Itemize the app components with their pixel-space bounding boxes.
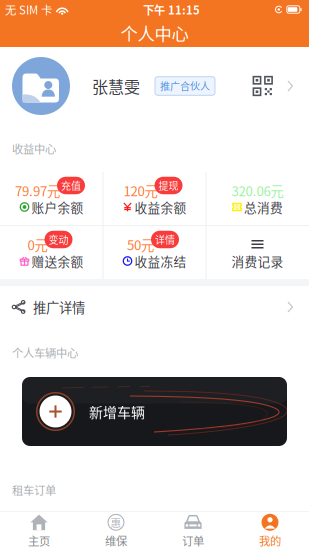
staticText: 120元 (123, 181, 157, 200)
staticText: 收益余额 (134, 198, 186, 216)
button[interactable]: 79.97元 (0, 172, 102, 225)
staticText: 张慧雯 (92, 74, 140, 98)
button[interactable]: 订单 (154, 512, 231, 550)
staticText: 推广详情 (33, 297, 85, 317)
staticText: 下午 11:15 (143, 1, 200, 18)
staticText: 充值 (61, 178, 81, 193)
staticText: 无 SIM 卡 (5, 1, 52, 18)
button[interactable]: 主页 (0, 512, 77, 550)
staticText: 主页 (28, 532, 50, 549)
button[interactable]: 惠 (77, 512, 154, 550)
button[interactable]: 320.06元 (206, 172, 308, 225)
staticText: 提现 (158, 178, 178, 193)
staticText: 订单 (182, 532, 204, 549)
staticText: 惠 (110, 515, 121, 530)
button[interactable]: 张慧雯 (0, 47, 309, 125)
staticText: 变动 (48, 232, 68, 247)
button[interactable]: 新增车辆 (22, 377, 287, 446)
staticText: 收益中心 (12, 140, 56, 157)
button[interactable]: 120元 (103, 172, 205, 225)
staticText: 推广合伙人 (160, 79, 210, 93)
staticText: 总消费 (244, 198, 283, 216)
staticText: 消费记录 (231, 252, 283, 270)
staticText: 新增车辆 (89, 401, 145, 422)
button[interactable]: 我的 (231, 512, 308, 550)
staticText: 我的 (259, 532, 281, 549)
staticText: 租车订单 (12, 482, 56, 498)
button[interactable]: 0元 (0, 226, 102, 279)
staticText: 50元 (127, 235, 154, 254)
staticText: 79.97元 (15, 181, 60, 200)
staticText: 个人中心 (120, 20, 188, 46)
staticText: 维保 (105, 532, 127, 549)
staticText: 详情 (155, 232, 175, 247)
staticText: 收益冻结 (134, 252, 186, 270)
button[interactable]: 50元 (103, 226, 205, 279)
button[interactable]: 消费记录 (206, 226, 308, 279)
staticText: 账户余额 (31, 198, 83, 216)
staticText: 0元 (27, 235, 47, 254)
button[interactable]: 推广详情 (0, 286, 309, 328)
staticText: 赠送余额 (31, 252, 83, 270)
staticText: 个人车辆中心 (12, 344, 78, 361)
staticText: 320.06元 (231, 181, 283, 200)
